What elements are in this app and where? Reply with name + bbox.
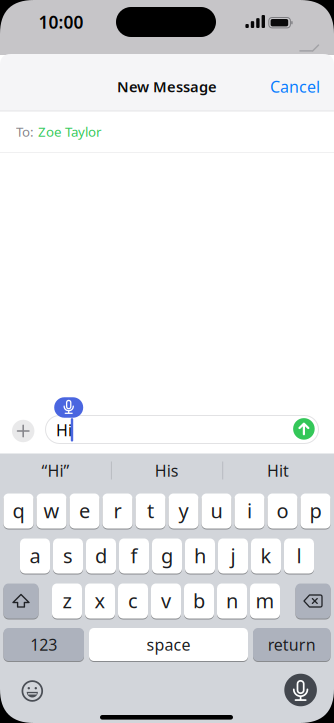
staticText: r bbox=[113, 497, 121, 524]
staticText: d bbox=[95, 542, 107, 569]
button[interactable]: d bbox=[86, 538, 116, 574]
staticText: l bbox=[296, 542, 301, 569]
button[interactable]: x bbox=[85, 583, 115, 619]
staticText: x bbox=[94, 587, 105, 614]
staticText: Hi bbox=[56, 419, 72, 441]
button[interactable]: Send bbox=[293, 418, 315, 440]
button[interactable]: k bbox=[251, 538, 281, 574]
staticText: a bbox=[29, 542, 40, 569]
button[interactable]: b bbox=[184, 583, 214, 619]
button[interactable]: w bbox=[36, 493, 66, 529]
staticText: return bbox=[268, 634, 316, 655]
button[interactable]: Add attachment bbox=[12, 420, 34, 442]
button[interactable]: Delete bbox=[295, 583, 330, 619]
button[interactable]: z bbox=[52, 583, 82, 619]
button[interactable]: f bbox=[119, 538, 149, 574]
staticText: space bbox=[146, 634, 190, 655]
button[interactable]: h bbox=[185, 538, 215, 574]
button[interactable]: Hit bbox=[225, 455, 330, 485]
staticText: “Hi” bbox=[42, 460, 70, 481]
button[interactable]: Numbers bbox=[3, 627, 84, 661]
staticText: v bbox=[161, 587, 171, 614]
button[interactable]: l bbox=[284, 538, 314, 574]
staticText: Cancel bbox=[270, 76, 320, 97]
button[interactable]: q bbox=[3, 493, 33, 529]
staticText: e bbox=[79, 497, 90, 524]
staticText: Zoe Taylor bbox=[38, 123, 102, 140]
button[interactable]: Message field bbox=[45, 415, 318, 443]
staticText: o bbox=[276, 497, 288, 524]
button[interactable]: return bbox=[253, 627, 330, 661]
button[interactable]: t bbox=[135, 493, 165, 529]
staticText: Hit bbox=[267, 460, 289, 481]
staticText: 10:00 bbox=[38, 10, 83, 33]
staticText: z bbox=[62, 587, 71, 614]
button[interactable]: To: Zoe Taylor bbox=[0, 111, 334, 152]
staticText: i bbox=[247, 497, 252, 524]
staticText: k bbox=[260, 542, 271, 569]
button[interactable]: Dictation bbox=[284, 674, 317, 706]
button[interactable]: e bbox=[69, 493, 99, 529]
button[interactable]: a bbox=[20, 538, 50, 574]
staticText: y bbox=[178, 497, 188, 524]
staticText: u bbox=[210, 497, 222, 524]
staticText: c bbox=[128, 587, 138, 614]
button[interactable]: p bbox=[300, 493, 330, 529]
staticText: j bbox=[230, 542, 235, 569]
staticText: b bbox=[193, 587, 205, 614]
staticText: 123 bbox=[30, 634, 57, 655]
staticText: w bbox=[43, 497, 59, 524]
staticText: s bbox=[63, 542, 73, 569]
button[interactable]: o bbox=[267, 493, 297, 529]
button[interactable]: Shift bbox=[3, 583, 38, 619]
button[interactable]: n bbox=[217, 583, 247, 619]
staticText: h bbox=[194, 542, 206, 569]
button[interactable]: Emoji bbox=[21, 680, 43, 702]
staticText: n bbox=[226, 587, 238, 614]
button[interactable]: g bbox=[152, 538, 182, 574]
button[interactable]: u bbox=[201, 493, 231, 529]
staticText: His bbox=[155, 460, 179, 481]
button[interactable]: m bbox=[250, 583, 280, 619]
staticText: New Message bbox=[117, 77, 217, 96]
staticText: m bbox=[255, 587, 274, 614]
button[interactable]: r bbox=[102, 493, 132, 529]
staticText: p bbox=[309, 497, 321, 524]
button[interactable]: v bbox=[151, 583, 181, 619]
button[interactable]: Cancel bbox=[265, 71, 325, 101]
button[interactable]: Dictation bbox=[54, 397, 83, 418]
button[interactable]: j bbox=[218, 538, 248, 574]
button[interactable]: “Hi” bbox=[3, 455, 108, 485]
button[interactable]: space bbox=[89, 627, 248, 661]
button[interactable]: y bbox=[168, 493, 198, 529]
staticText: f bbox=[130, 542, 137, 569]
button[interactable]: i bbox=[234, 493, 264, 529]
button[interactable]: His bbox=[114, 455, 219, 485]
staticText: To: bbox=[16, 123, 34, 140]
staticText: q bbox=[12, 497, 24, 524]
staticText: g bbox=[161, 542, 173, 569]
button[interactable]: c bbox=[118, 583, 148, 619]
button[interactable]: s bbox=[53, 538, 83, 574]
staticText: t bbox=[147, 497, 154, 524]
